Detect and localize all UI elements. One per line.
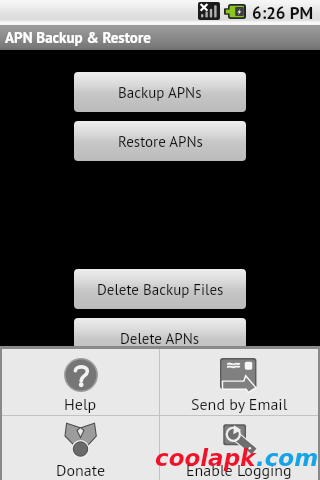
staticText: Delete APNs xyxy=(120,329,200,348)
staticText: Delete Backup Files xyxy=(97,280,224,299)
staticText: Enable Logging xyxy=(186,460,292,480)
button[interactable]: Enable Logging xyxy=(160,416,318,480)
button[interactable]: Restore APNs xyxy=(74,121,246,161)
button[interactable]: Donate xyxy=(2,416,159,480)
staticText: Restore APNs xyxy=(118,132,203,151)
button[interactable]: Help xyxy=(2,349,159,415)
staticText: Donate xyxy=(56,460,106,480)
button[interactable]: Delete APNs xyxy=(74,318,246,358)
staticText: .com xyxy=(256,445,319,472)
staticText: Send by Email xyxy=(191,394,288,415)
staticText: 6:26 PM xyxy=(252,2,314,24)
button[interactable]: Delete Backup Files xyxy=(74,269,246,309)
staticText: coolapk xyxy=(155,445,256,472)
staticText: APN Backup & Restore xyxy=(5,28,151,47)
staticText: Backup APNs xyxy=(118,83,202,102)
staticText: Help xyxy=(64,394,97,415)
button[interactable]: Send by Email xyxy=(160,349,318,415)
button[interactable]: Backup APNs xyxy=(74,72,246,112)
